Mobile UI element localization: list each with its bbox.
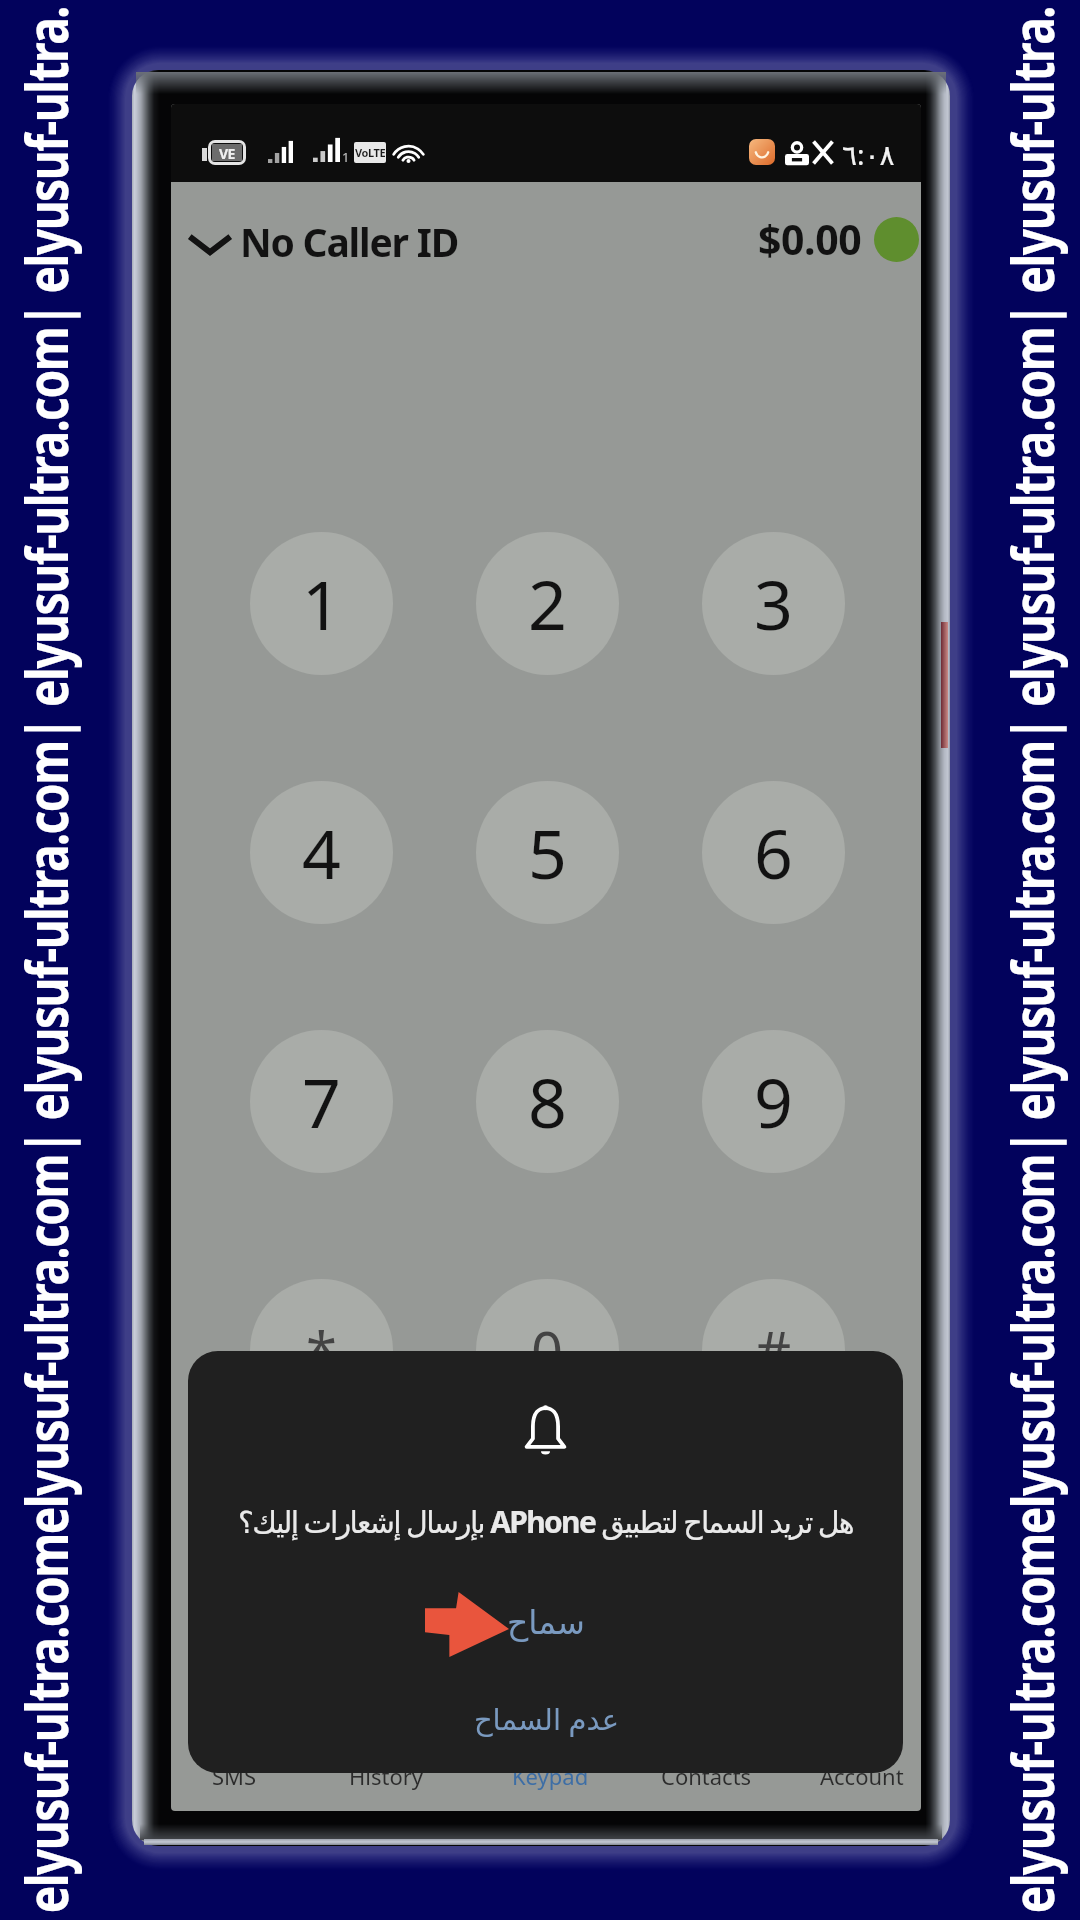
button[interactable]: SMS: [171, 1742, 306, 1810]
button[interactable]: عدم السماح: [188, 1680, 903, 1756]
button[interactable]: 1: [250, 532, 393, 675]
staticText: elyusuf-ultra.comelyusuf-ultra.com| elyu…: [993, 7, 1071, 1913]
staticText: 1: [342, 148, 350, 166]
staticText: عدم السماح: [473, 1699, 619, 1738]
staticText: elyusuf-ultra.comelyusuf-ultra.com| elyu…: [7, 7, 85, 1913]
button[interactable]: 3: [702, 532, 845, 675]
staticText: هل تريد السماح لتطبيق APhone بإرسال إشعا…: [238, 1501, 853, 1542]
button[interactable]: 6: [702, 781, 845, 924]
button[interactable]: Account connected: [874, 217, 919, 262]
button[interactable]: Contacts: [634, 1742, 778, 1810]
button[interactable]: *: [250, 1279, 393, 1422]
staticText: No Caller ID: [240, 215, 459, 268]
button[interactable]: Keypad: [478, 1742, 622, 1810]
staticText: VoLTE: [355, 145, 386, 160]
button[interactable]: 9: [702, 1030, 845, 1173]
staticText: History: [349, 1761, 424, 1791]
button[interactable]: 8: [476, 1030, 619, 1173]
staticText: 2: [528, 557, 567, 650]
staticText: *: [306, 1313, 337, 1389]
button[interactable]: 2: [476, 532, 619, 675]
staticText: سماح: [506, 1603, 585, 1641]
button[interactable]: History: [314, 1742, 458, 1810]
button[interactable]: 0: [476, 1279, 619, 1422]
staticText: 4: [302, 806, 341, 899]
staticText: 5: [528, 806, 567, 899]
staticText: 3: [754, 557, 793, 650]
button[interactable]: $0.00: [758, 211, 862, 267]
button[interactable]: 5: [476, 781, 619, 924]
button[interactable]: Account: [790, 1742, 921, 1810]
staticText: Account: [820, 1761, 904, 1791]
button[interactable]: 7: [250, 1030, 393, 1173]
staticText: ٦:٠٨: [842, 135, 895, 173]
button[interactable]: سماح: [188, 1584, 903, 1660]
staticText: 6: [754, 806, 793, 899]
staticText: Keypad: [512, 1761, 589, 1791]
button[interactable]: #: [702, 1279, 845, 1422]
staticText: 8: [528, 1055, 567, 1148]
staticText: SMS: [212, 1761, 257, 1791]
staticText: 7: [302, 1055, 341, 1148]
staticText: $0.00: [758, 211, 862, 267]
staticText: 9: [754, 1055, 793, 1148]
staticText: #: [755, 1313, 792, 1389]
staticText: Contacts: [661, 1761, 752, 1791]
button[interactable]: 4: [250, 781, 393, 924]
staticText: 1: [302, 557, 341, 650]
staticText: 0: [531, 1313, 564, 1389]
button[interactable]: No Caller ID: [187, 215, 459, 268]
staticText: VE: [219, 144, 235, 161]
